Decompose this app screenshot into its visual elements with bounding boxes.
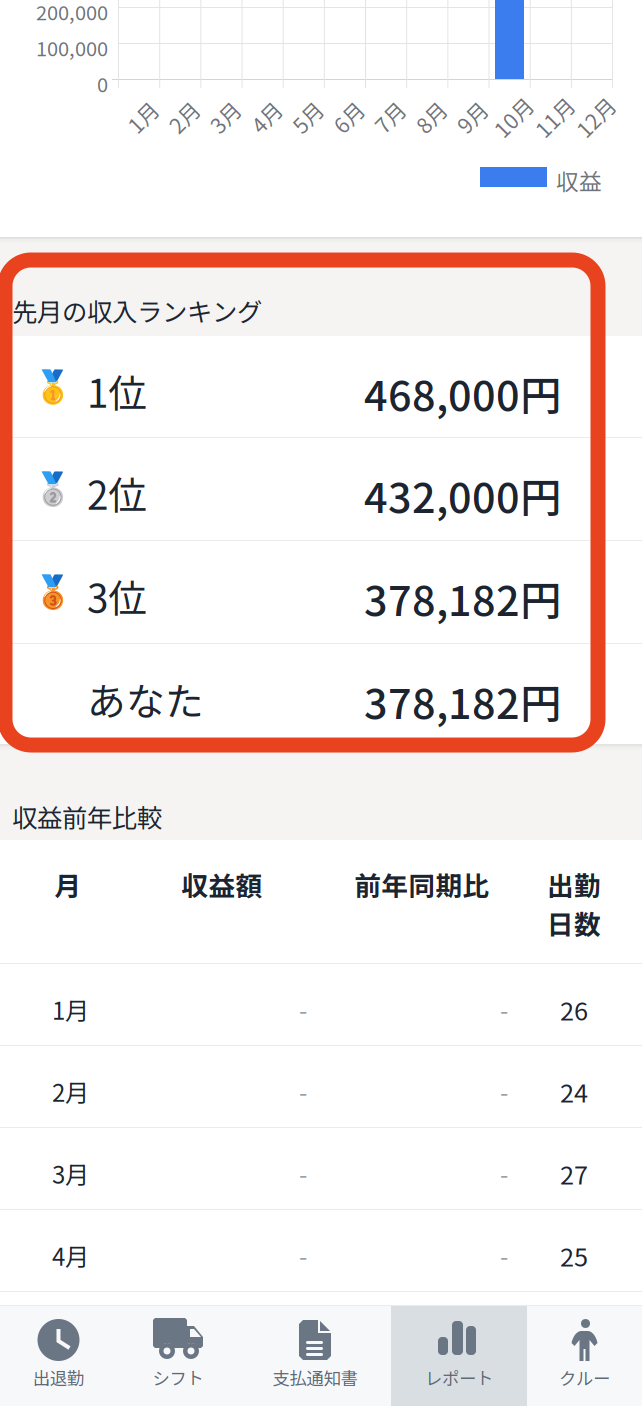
button[interactable]: 🥉 [0,541,642,643]
button[interactable]: あなた [0,644,642,745]
staticText: 2月 [167,102,200,132]
staticText: 出勤 日数 [547,865,601,942]
staticText: - [299,992,307,1027]
staticText: 26 [560,991,588,1028]
staticText: 100,000 [36,33,108,62]
staticText: 3位 [87,568,147,624]
staticText: 8月 [414,102,447,132]
staticText: 1月 [126,102,159,132]
staticText: 0 [97,69,108,98]
staticText: あなた [87,671,204,727]
button[interactable]: 🥈 [0,438,642,540]
staticText: 🥉 [33,573,73,610]
staticText: 200,000 [36,0,108,26]
staticText: 27 [560,1155,588,1192]
staticText: 2位 [87,465,147,521]
staticText: - [500,1156,508,1191]
button[interactable]: クルー [527,1306,642,1406]
button[interactable]: 出退勤 [0,1306,117,1406]
staticText: 前年同期比 [354,865,489,904]
staticText: 468,000円 [364,363,561,423]
staticText: 月 [54,865,81,904]
staticText: シフト [152,1365,203,1390]
staticText: 収益前年比較 [12,798,162,835]
staticText: - [500,1074,508,1109]
staticText: 378,182円 [364,568,561,628]
staticText: 1月 [52,992,89,1027]
staticText: - [500,1238,508,1273]
staticText: - [299,1238,307,1273]
staticText: 先月の収入ランキング [12,292,262,329]
staticText: 9月 [455,102,488,132]
staticText: 12月 [573,102,618,132]
staticText: 4月 [250,102,283,132]
staticText: 3月 [52,1156,89,1191]
staticText: - [299,1156,307,1191]
staticText: 3月 [208,102,241,132]
staticText: 収益額 [181,865,262,904]
staticText: 432,000円 [364,465,561,525]
staticText: クルー [559,1365,610,1390]
staticText: 🥈 [33,470,73,507]
staticText: 出退勤 [33,1365,84,1390]
staticText: 7月 [373,102,406,132]
staticText: 25 [560,1237,588,1274]
button[interactable]: 支払通知書 [239,1306,391,1406]
staticText: 収益 [556,164,602,197]
staticText: レポート [425,1365,493,1390]
staticText: - [299,1074,307,1109]
staticText: 11月 [532,102,577,132]
staticText: 6月 [332,102,365,132]
staticText: 4月 [52,1238,89,1273]
button[interactable]: 🥇 [0,336,642,437]
staticText: 🥇 [33,368,73,405]
staticText: 1位 [87,363,147,419]
button[interactable]: レポート [391,1306,527,1406]
button[interactable]: シフト [117,1306,239,1406]
staticText: 2月 [52,1074,89,1109]
staticText: 支払通知書 [272,1365,357,1390]
staticText: 5月 [291,102,324,132]
staticText: 378,182円 [364,671,561,731]
staticText: 24 [560,1073,588,1110]
staticText: 10月 [491,102,536,132]
staticText: - [500,992,508,1027]
